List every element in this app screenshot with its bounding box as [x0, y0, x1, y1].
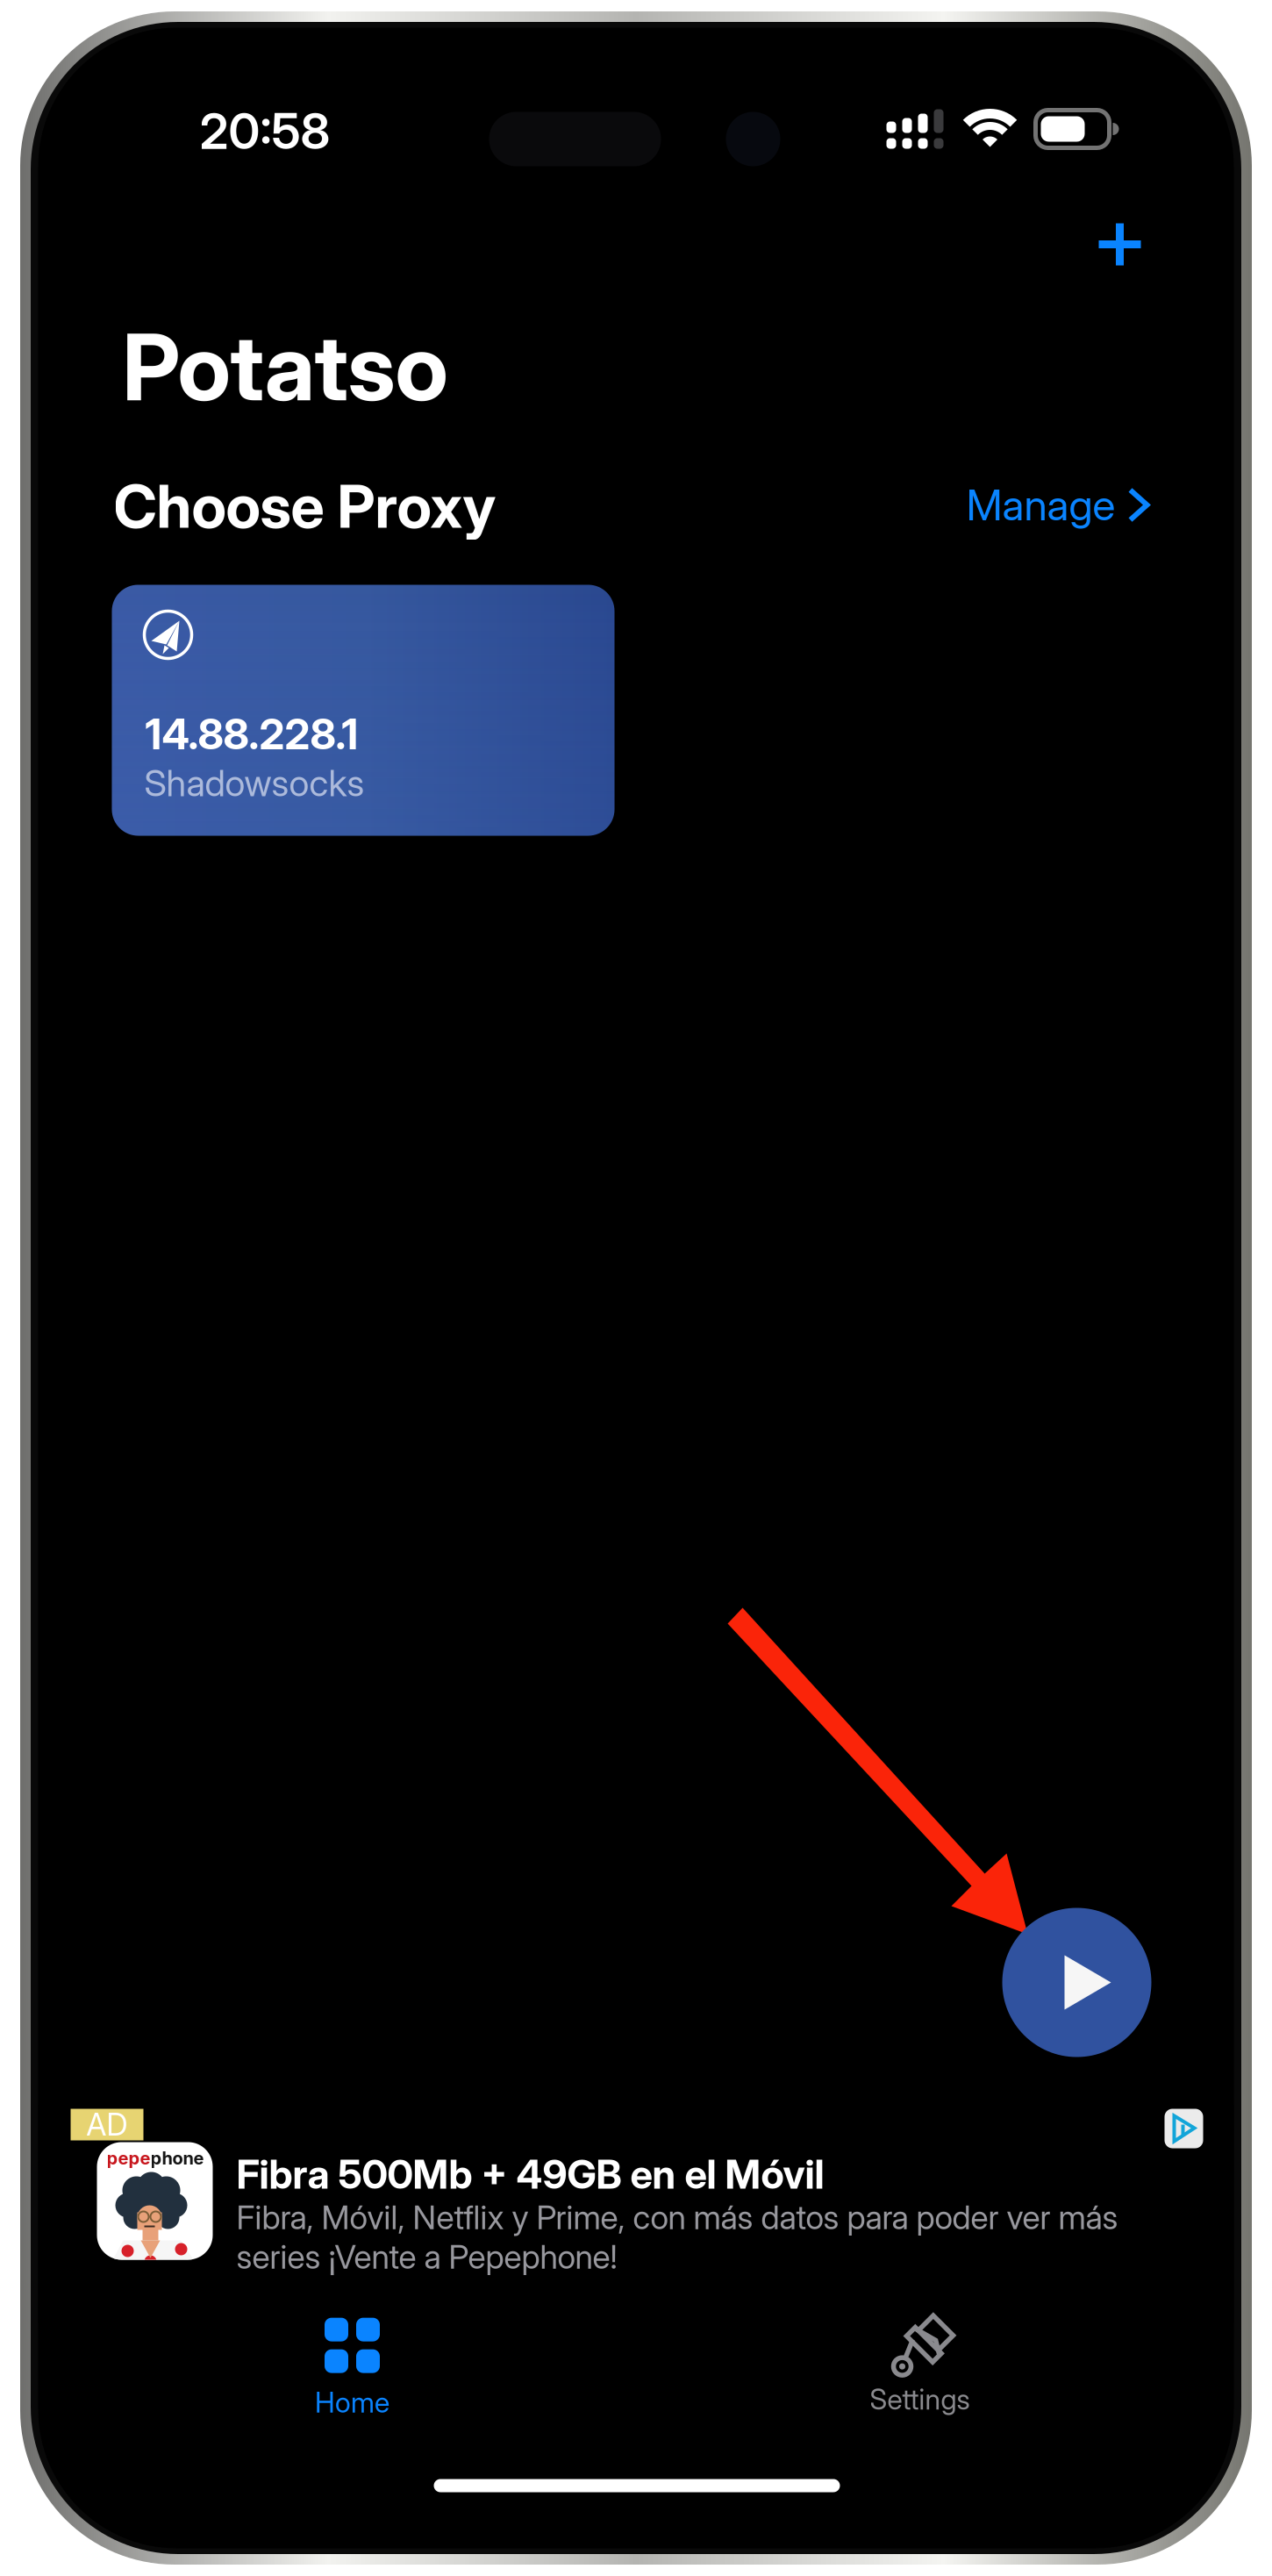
staticText: Manage [966, 479, 1115, 530]
button[interactable]: 14.88.228.1 Shadowsocks proxy [112, 585, 615, 836]
staticText: Potatso [122, 312, 448, 422]
staticText: Choose Proxy [114, 470, 496, 542]
button[interactable]: Home [221, 2311, 484, 2426]
staticText: Home [315, 2385, 389, 2419]
staticText: 14.88.228.1 [145, 708, 358, 759]
staticText: Fibra, Móvil, Netflix y Prime, con más d… [236, 2197, 1118, 2277]
staticText: Shadowsocks [144, 761, 364, 805]
staticText: phone [150, 2147, 204, 2169]
button[interactable]: Manage [940, 477, 1151, 533]
staticText: 20:58 [200, 101, 330, 161]
button[interactable]: Advertisement: Fibra 500Mb + 49GB en el … [38, 2104, 1234, 2324]
button[interactable]: Connect [1002, 1908, 1151, 2057]
staticText: pepe [107, 2147, 150, 2169]
button[interactable]: Settings [788, 2304, 1051, 2419]
button[interactable]: Add [1069, 193, 1171, 295]
staticText: AD [86, 2106, 128, 2143]
staticText: Settings [870, 2382, 970, 2416]
staticText: Fibra 500Mb + 49GB en el Móvil [236, 2150, 824, 2198]
